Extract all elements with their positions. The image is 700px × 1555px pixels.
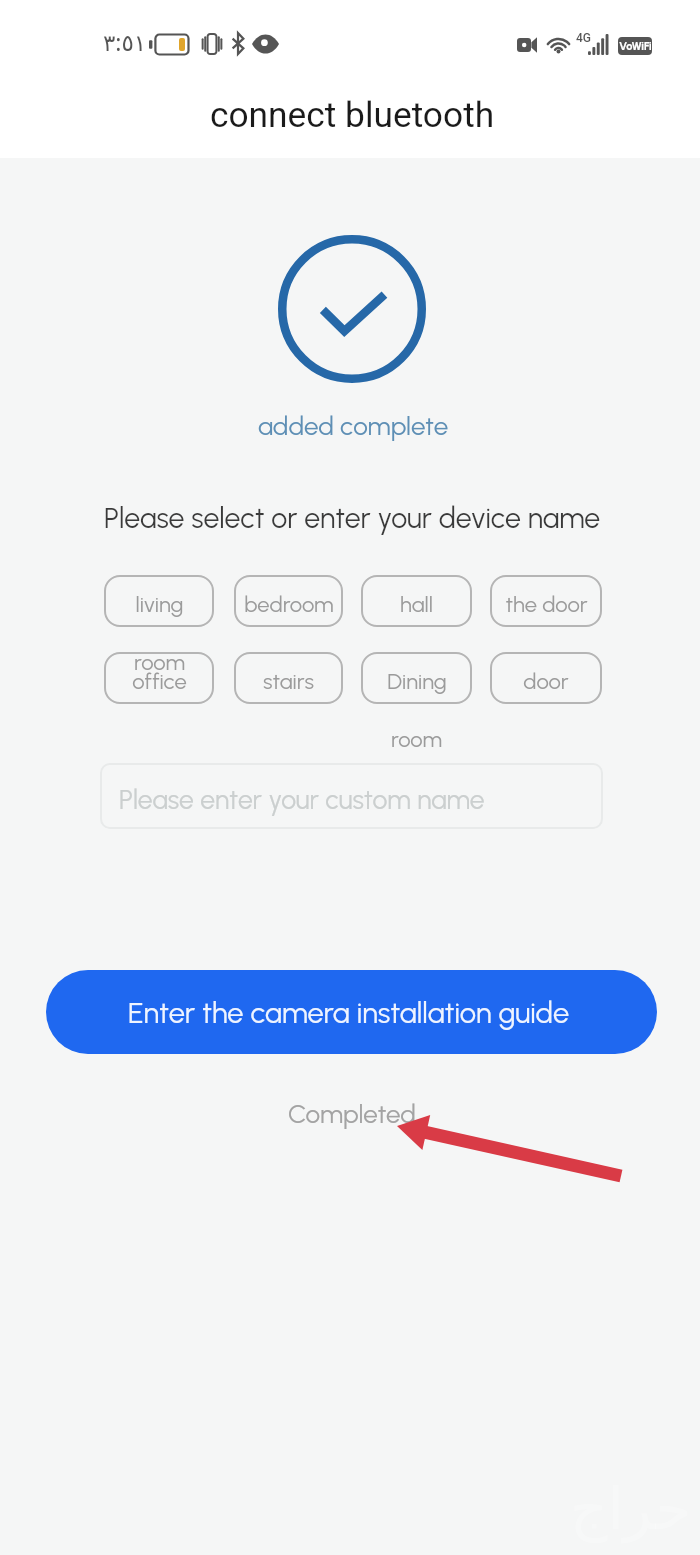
staticText: office — [132, 668, 187, 694]
staticText: 4G — [576, 31, 591, 45]
staticText: hall — [400, 591, 433, 617]
button[interactable]: Please enter your custom name — [100, 763, 603, 829]
staticText: connect bluetooth — [210, 94, 495, 135]
button[interactable]: Completed — [288, 1098, 416, 1129]
staticText: Enter the camera installation guide — [128, 995, 570, 1030]
staticText: stairs — [263, 668, 314, 694]
staticText: bedroom — [244, 591, 334, 617]
button[interactable] — [361, 652, 472, 704]
staticText: Dining — [387, 668, 447, 694]
button[interactable] — [490, 652, 602, 704]
button[interactable] — [104, 652, 214, 704]
staticText: added complete — [258, 410, 449, 441]
staticText: room — [391, 726, 442, 752]
button[interactable] — [490, 575, 602, 627]
button[interactable] — [234, 652, 343, 704]
button[interactable] — [234, 575, 343, 627]
staticText: Completed — [288, 1098, 416, 1129]
staticText: VoWiFi — [619, 40, 652, 53]
staticText: the door — [505, 591, 588, 617]
staticText: Please select or enter your device name — [104, 501, 601, 535]
staticText: door — [523, 668, 569, 694]
button[interactable] — [104, 575, 214, 627]
button[interactable] — [361, 575, 472, 627]
staticText: Please enter your custom name — [119, 784, 485, 816]
staticText: room — [134, 649, 185, 675]
button[interactable]: Enter the camera installation guide — [46, 970, 657, 1054]
staticText: ٣:٥١ — [103, 26, 147, 57]
staticText: living — [135, 591, 184, 617]
